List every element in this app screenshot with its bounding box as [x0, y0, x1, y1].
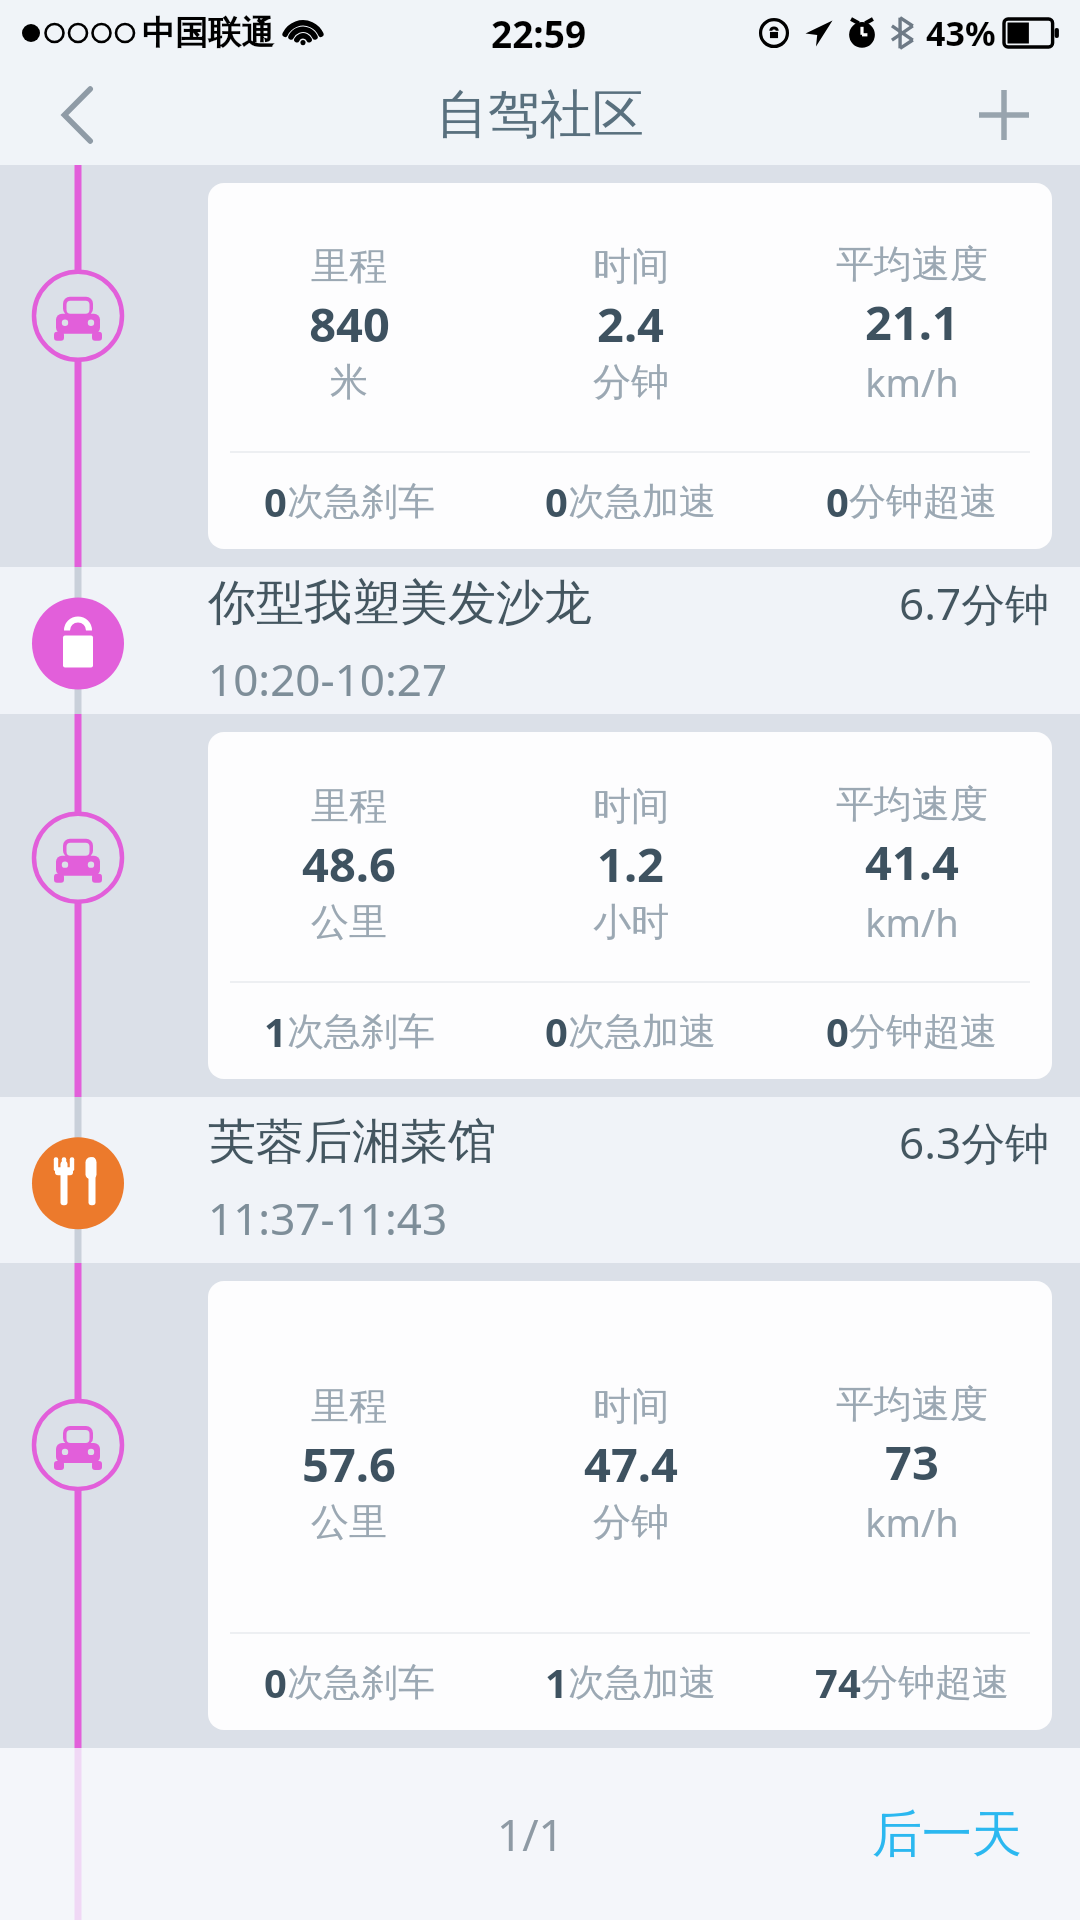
button[interactable]: 里程 — [208, 183, 1052, 549]
staticText: 0 — [826, 1004, 849, 1058]
staticText: 0 — [264, 1655, 287, 1709]
staticText: 次急刹车 — [287, 1008, 435, 1055]
staticText: 小时 — [593, 898, 669, 946]
staticText: 后一天 — [872, 1803, 1022, 1866]
staticText: km/h — [865, 356, 959, 408]
staticText: 74 — [815, 1655, 861, 1709]
staticText: 21.1 — [865, 290, 959, 354]
staticText: 次急加速 — [568, 478, 716, 525]
staticText: 里程 — [311, 242, 387, 290]
staticText: 840 — [309, 292, 390, 356]
button[interactable]: 芙蓉后湘菜馆 — [0, 1097, 1080, 1263]
staticText: 分钟 — [593, 358, 669, 406]
staticText: 次急刹车 — [287, 478, 435, 525]
staticText: 你型我塑美发沙龙 — [208, 573, 592, 633]
button[interactable]: 后一天 — [854, 1785, 1040, 1884]
staticText: 6.3分钟 — [899, 1112, 1050, 1172]
staticText: 次急加速 — [568, 1659, 716, 1706]
button[interactable]: 里程 — [208, 1281, 1052, 1730]
staticText: 1.2 — [597, 832, 664, 896]
staticText: 48.6 — [302, 832, 396, 896]
staticText: 自驾社区 — [436, 82, 644, 148]
staticText: 分钟 — [593, 1498, 669, 1546]
staticText: 1/1 — [497, 1804, 564, 1864]
staticText: 平均速度 — [836, 1380, 988, 1428]
staticText: 1 — [545, 1655, 568, 1709]
staticText: 时间 — [593, 242, 669, 290]
staticText: 57.6 — [302, 1432, 396, 1496]
staticText: 0 — [545, 474, 568, 528]
button[interactable]: Add — [966, 77, 1042, 153]
staticText: 41.4 — [865, 830, 959, 894]
staticText: 时间 — [593, 782, 669, 830]
staticText: 米 — [330, 358, 368, 406]
staticText: 22:59 — [491, 8, 587, 58]
staticText: 分钟超速 — [849, 1008, 997, 1055]
staticText: 2.4 — [597, 292, 664, 356]
staticText: 6.7分钟 — [899, 573, 1050, 633]
staticText: 公里 — [311, 1498, 387, 1546]
staticText: 73 — [885, 1430, 939, 1494]
staticText: 中国联通 — [142, 12, 274, 54]
staticText: 里程 — [311, 1382, 387, 1430]
staticText: 时间 — [593, 1382, 669, 1430]
button[interactable]: 1/1 — [479, 1786, 582, 1882]
staticText: km/h — [865, 896, 959, 948]
staticText: 次急加速 — [568, 1008, 716, 1055]
staticText: 0 — [545, 1004, 568, 1058]
staticText: 里程 — [311, 782, 387, 830]
staticText: 0 — [826, 474, 849, 528]
staticText: 平均速度 — [836, 780, 988, 828]
staticText: 1 — [264, 1004, 287, 1058]
staticText: km/h — [865, 1496, 959, 1548]
staticText: 分钟超速 — [861, 1659, 1009, 1706]
button[interactable]: Back — [40, 77, 116, 153]
staticText: 47.4 — [584, 1432, 678, 1496]
staticText: 11:37-11:43 — [208, 1188, 448, 1248]
staticText: 0 — [264, 474, 287, 528]
staticText: 10:20-10:27 — [208, 649, 448, 709]
staticText: 分钟超速 — [849, 478, 997, 525]
button[interactable]: 里程 — [208, 732, 1052, 1079]
button[interactable]: 你型我塑美发沙龙 — [0, 567, 1080, 714]
staticText: 平均速度 — [836, 240, 988, 288]
staticText: 43% — [926, 10, 996, 56]
staticText: 次急刹车 — [287, 1659, 435, 1706]
staticText: 芙蓉后湘菜馆 — [208, 1112, 496, 1172]
staticText: 公里 — [311, 898, 387, 946]
